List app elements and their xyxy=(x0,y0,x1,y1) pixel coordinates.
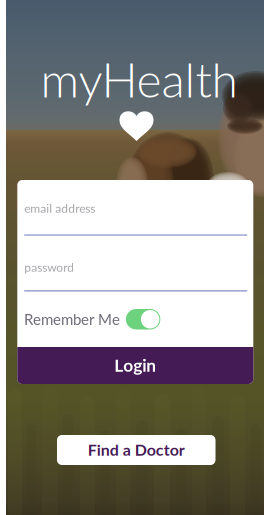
staticText: email address xyxy=(24,201,95,215)
staticText: Find a Doctor xyxy=(88,440,185,459)
button[interactable]: Find a Doctor xyxy=(57,435,215,465)
staticText: myHealth xyxy=(40,50,237,108)
staticText: Login xyxy=(114,355,156,375)
staticText: password xyxy=(24,260,74,274)
button[interactable]: Remember Me xyxy=(126,309,160,329)
staticText: Remember Me xyxy=(24,310,120,328)
button[interactable]: Login xyxy=(17,347,253,384)
